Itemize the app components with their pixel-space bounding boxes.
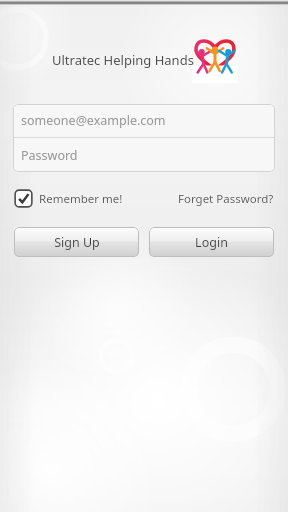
- staticText: Login: [195, 234, 228, 251]
- staticText: Sign Up: [54, 234, 100, 251]
- staticText: someone@example.com: [21, 112, 166, 129]
- button[interactable]: Login: [149, 227, 274, 257]
- staticText: Ultratec Helping Hands: [52, 51, 194, 69]
- button[interactable]: Password: [13, 138, 275, 172]
- staticText: Forget Password?: [178, 191, 274, 207]
- button[interactable]: Remember me!: [14, 189, 123, 208]
- button[interactable]: someone@example.com: [13, 104, 275, 137]
- staticText: Password: [21, 147, 78, 164]
- button[interactable]: Forget Password?: [178, 191, 274, 207]
- staticText: Remember me!: [39, 191, 123, 207]
- button[interactable]: Sign Up: [14, 227, 139, 257]
